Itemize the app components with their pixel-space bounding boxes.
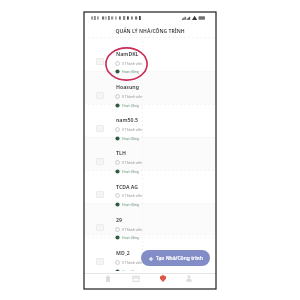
button[interactable] (84, 71, 216, 104)
button[interactable]: Projects (124, 271, 148, 289)
button[interactable]: Home (96, 271, 120, 289)
staticText: Hoạt động (122, 202, 139, 207)
button[interactable] (84, 170, 216, 203)
staticText: 0 Thành viên (122, 193, 143, 198)
staticText: 0 Thành viên (122, 160, 143, 165)
button[interactable]: Account (177, 271, 201, 289)
staticText: Hoạt động (122, 169, 139, 174)
staticText: 0 Thành viên (122, 260, 143, 265)
button[interactable] (84, 137, 216, 170)
staticText: 29 (116, 216, 122, 223)
button[interactable]: Tạo Nhà/Công trình (141, 250, 210, 266)
staticText: 0 Thành viên (122, 61, 143, 66)
button[interactable]: Notifications (151, 271, 175, 289)
staticText: Hoasung (116, 83, 139, 90)
staticText: 0 Thành viên (122, 127, 143, 132)
staticText: Hoạt động (122, 69, 139, 74)
button[interactable] (84, 237, 216, 270)
button[interactable] (84, 37, 216, 70)
staticText: Tạo Nhà/Công trình (156, 255, 203, 262)
staticText: QUẢN LÝ NHÀ/CÔNG TRÌNH (115, 28, 185, 35)
staticText: Hoạt động (122, 136, 139, 141)
button[interactable] (84, 104, 216, 137)
staticText: Hoạt động (122, 269, 139, 274)
staticText: TLH (116, 149, 126, 156)
staticText: nam50.5 (116, 116, 138, 123)
staticText: MD_2 (116, 249, 130, 256)
staticText: 0 Thành viên (122, 94, 143, 99)
staticText: Hoạt động (122, 235, 139, 240)
staticText: 0 Thành viên (122, 227, 143, 232)
staticText: NamDKL (116, 50, 139, 57)
staticText: Hoạt động (122, 103, 139, 108)
staticText: TCDA AG (116, 183, 139, 190)
button[interactable] (84, 203, 216, 236)
